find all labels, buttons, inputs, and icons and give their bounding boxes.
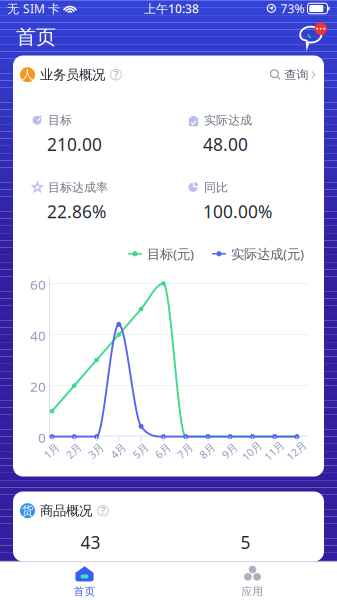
- staticText: 5月: [132, 443, 149, 458]
- staticText: 实际达成(元): [231, 245, 304, 263]
- staticText: ?: [113, 68, 118, 82]
- staticText: 商品概况: [40, 502, 92, 519]
- staticText: 上午10:38: [144, 0, 199, 16]
- staticText: 43: [80, 531, 100, 554]
- staticText: 目标达成率: [48, 180, 108, 195]
- staticText: 0: [38, 429, 46, 446]
- staticText: 6月: [154, 443, 171, 458]
- staticText: 1月: [43, 443, 60, 458]
- staticText: 首页: [16, 25, 56, 49]
- staticText: 100.00%: [203, 200, 272, 223]
- staticText: 8月: [199, 443, 216, 458]
- staticText: 目标(元): [147, 245, 194, 263]
- staticText: 210.00: [47, 133, 102, 156]
- staticText: 48.00: [203, 133, 248, 156]
- staticText: 货: [21, 503, 33, 518]
- staticText: 无 SIM 卡: [7, 0, 60, 16]
- staticText: 20: [30, 378, 46, 395]
- staticText: 22.86%: [47, 200, 106, 223]
- button[interactable]: 消息: [299, 25, 327, 48]
- staticText: 2月: [65, 443, 82, 458]
- staticText: 3月: [87, 443, 104, 458]
- staticText: 实际达成: [204, 113, 252, 128]
- staticText: 11月: [263, 443, 286, 458]
- staticText: 40: [30, 327, 46, 344]
- staticText: 同比: [204, 180, 228, 195]
- button[interactable]: 首页: [0, 562, 168, 600]
- staticText: 首页: [73, 585, 95, 598]
- staticText: 60: [30, 276, 46, 293]
- staticText: 目标: [48, 113, 72, 128]
- staticText: 应用: [241, 585, 263, 598]
- staticText: 4月: [110, 443, 127, 458]
- button[interactable]: 应用: [168, 562, 336, 600]
- staticText: 7月: [177, 443, 194, 458]
- button[interactable]: 查询: [269, 67, 315, 82]
- staticText: 查询: [284, 67, 308, 82]
- staticText: 9月: [221, 443, 238, 458]
- staticText: 业务员概况: [40, 66, 105, 83]
- staticText: 10月: [240, 443, 263, 458]
- staticText: 人: [21, 67, 33, 82]
- staticText: 12月: [285, 443, 308, 458]
- staticText: 73%: [280, 0, 304, 16]
- staticText: ?: [100, 504, 105, 518]
- staticText: 5: [240, 531, 250, 554]
